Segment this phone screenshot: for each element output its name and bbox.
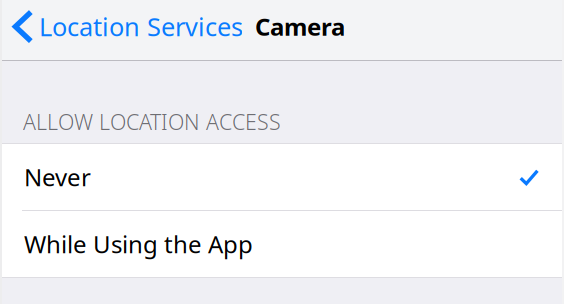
staticText: While Using the App xyxy=(24,228,253,260)
button[interactable]: Camera xyxy=(245,0,345,53)
staticText: ALLOW LOCATION ACCESS xyxy=(23,108,281,136)
staticText: Never xyxy=(24,161,91,193)
button[interactable]: While Using the App xyxy=(0,211,564,277)
button[interactable]: Location Services xyxy=(0,0,245,53)
staticText: Location Services xyxy=(39,10,243,43)
button[interactable]: Never xyxy=(0,144,564,210)
staticText: Camera xyxy=(255,11,345,42)
